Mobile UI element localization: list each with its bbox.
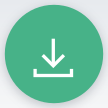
button[interactable]: Download: [0, 0, 108, 108]
